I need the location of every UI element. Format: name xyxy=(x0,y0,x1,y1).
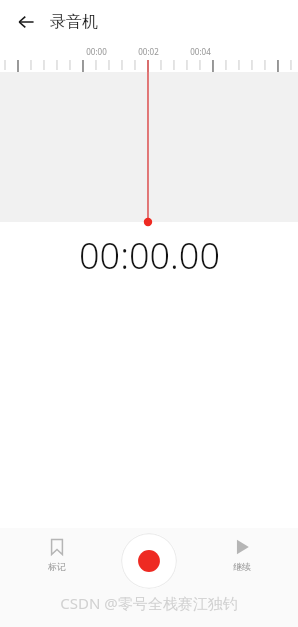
staticText: 00:00 xyxy=(86,46,107,57)
button[interactable]: Back xyxy=(12,8,40,36)
button[interactable]: Record xyxy=(121,533,177,589)
staticText: 录音机 xyxy=(50,12,98,32)
button[interactable]: 标记 xyxy=(29,534,85,576)
staticText: 00:00.00 xyxy=(79,231,220,280)
staticText: CSDN @零号全栈赛江独钓 xyxy=(60,593,238,613)
button[interactable]: 继续 xyxy=(214,534,270,576)
staticText: 标记 xyxy=(48,561,66,572)
staticText: 00:02 xyxy=(138,46,159,57)
staticText: 00:04 xyxy=(190,46,211,57)
staticText: 继续 xyxy=(233,561,251,572)
